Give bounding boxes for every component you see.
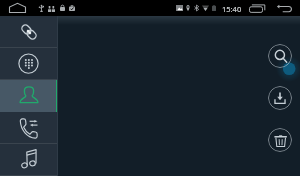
button[interactable]: Bluetooth pairing [0,16,58,48]
button[interactable]: Home [9,3,26,13]
button[interactable]: Contacts [0,80,58,112]
button[interactable]: Delete [268,128,292,152]
button[interactable]: Recent apps [249,4,266,13]
button[interactable]: Search [268,44,292,68]
button[interactable]: Back [276,4,292,13]
button[interactable]: Call log [0,112,58,144]
staticText: 15:40 [222,4,242,14]
button[interactable]: Music [0,144,58,176]
button[interactable]: Download [268,86,292,110]
button[interactable]: Dial pad [0,48,58,80]
